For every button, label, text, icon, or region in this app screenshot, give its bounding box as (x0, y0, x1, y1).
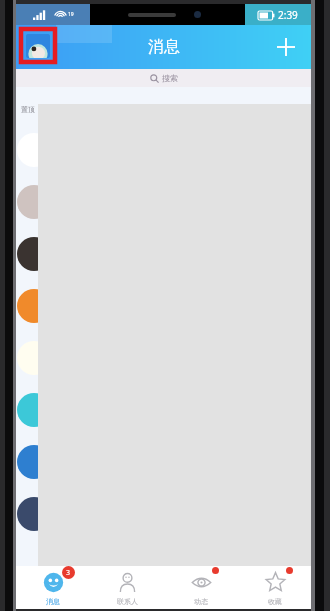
button[interactable] (16, 176, 311, 228)
button[interactable] (16, 124, 311, 176)
button[interactable]: 动态 (164, 566, 238, 609)
button[interactable]: Add (271, 32, 301, 62)
staticText: 收藏 (268, 597, 282, 606)
staticText: 3 (66, 568, 71, 578)
button[interactable] (16, 228, 311, 280)
button[interactable]: Profile (21, 29, 55, 62)
button[interactable] (16, 436, 311, 488)
staticText: 消息 (46, 597, 60, 606)
button[interactable]: 联系人 (90, 566, 164, 609)
staticText: 联系人 (117, 597, 138, 606)
staticText: 置顶 (21, 105, 35, 114)
staticText: 消息 (148, 37, 180, 57)
button[interactable] (16, 488, 311, 540)
staticText: 动态 (194, 597, 208, 606)
button[interactable] (16, 384, 311, 436)
button[interactable] (16, 280, 311, 332)
staticText: 19 (68, 11, 74, 18)
button[interactable]: 搜索 (16, 69, 311, 87)
button[interactable]: 收藏 (238, 566, 311, 609)
staticText: 搜索 (162, 73, 178, 83)
button[interactable]: 3 (16, 566, 90, 609)
button[interactable] (16, 332, 311, 384)
staticText: 2:39 (278, 8, 298, 22)
